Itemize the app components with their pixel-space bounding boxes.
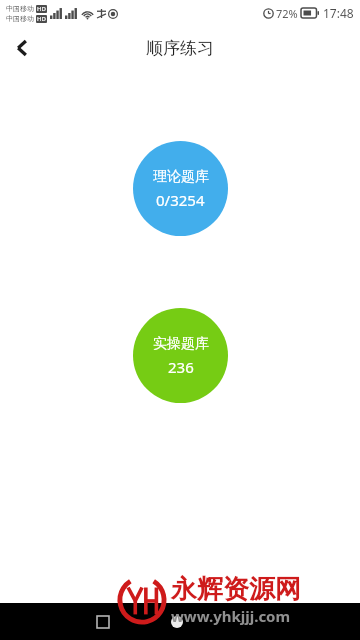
staticText: 中国移动	[6, 14, 34, 23]
staticText: 0/3254	[156, 190, 205, 210]
staticText: 17:48	[323, 5, 354, 21]
button[interactable]: Recent apps	[86, 605, 120, 639]
staticText: 236	[168, 357, 194, 377]
staticText: HD	[37, 15, 46, 23]
staticText: 理论题库	[153, 168, 209, 186]
staticText: 实操题库	[153, 335, 209, 353]
staticText: 中国移动	[6, 4, 34, 13]
staticText: www.yhkjjj.com	[171, 606, 291, 626]
button[interactable]: 实操题库	[133, 308, 228, 403]
button[interactable]: 理论题库	[133, 141, 228, 236]
staticText: 顺序练习	[146, 38, 214, 59]
button[interactable]: Back	[0, 26, 44, 70]
staticText: HD	[37, 5, 46, 13]
staticText: 永辉资源网	[171, 573, 301, 606]
button[interactable]: Home	[160, 605, 194, 639]
staticText: 72%	[276, 6, 298, 21]
